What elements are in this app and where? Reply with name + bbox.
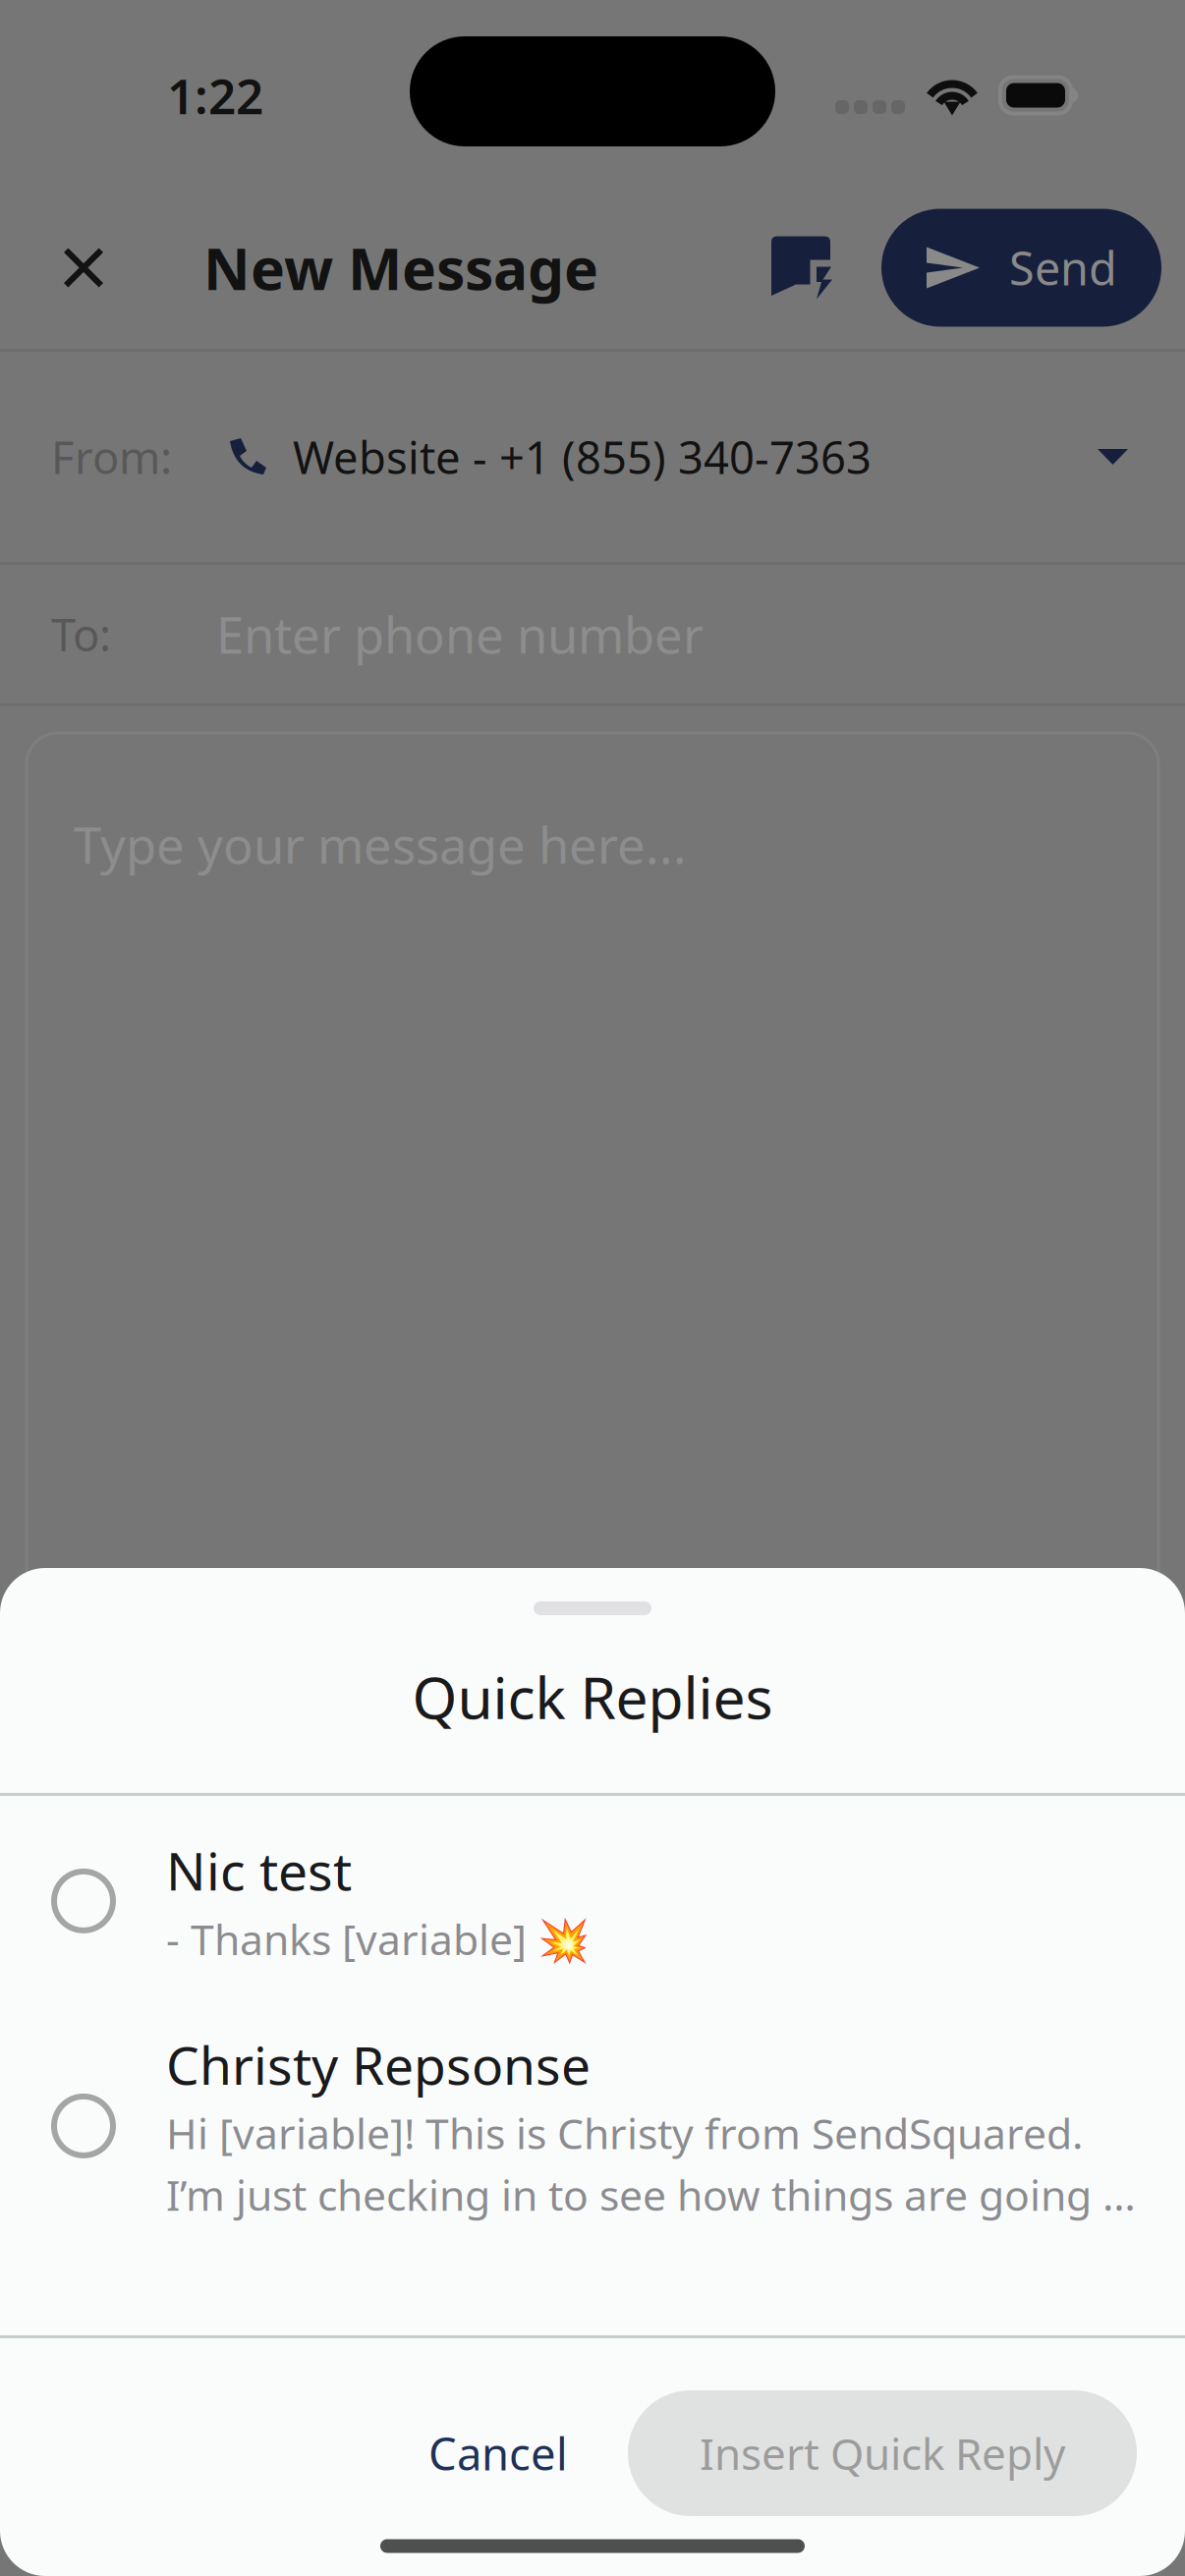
staticText: New Message <box>203 229 598 306</box>
staticText: Quick Replies <box>412 1658 773 1735</box>
button[interactable]: Insert Quick Reply <box>628 2390 1137 2516</box>
button[interactable]: Quick Replies <box>746 199 858 336</box>
staticText: From: <box>51 427 172 486</box>
staticText: Enter phone number <box>216 601 704 667</box>
button[interactable]: Nic test <box>0 1796 1185 2006</box>
staticText: To: <box>51 605 111 664</box>
button[interactable]: Christy Repsonse <box>0 2006 1185 2246</box>
staticText: Christy Repsonse <box>166 2030 591 2099</box>
staticText: Send <box>1009 237 1117 298</box>
staticText: I’m just checking in to see how things a… <box>166 2167 1136 2222</box>
staticText: Insert Quick Reply <box>700 2425 1065 2482</box>
button[interactable]: Close <box>32 199 135 336</box>
staticText: - Thanks [variable] 💥 <box>166 1911 590 1967</box>
staticText: Type your message here... <box>74 812 687 878</box>
staticText: Hi [variable]! This is Christy from Send… <box>166 2105 1083 2161</box>
staticText: Website - +1 (855) 340-7363 <box>293 427 872 486</box>
button[interactable]: Cancel <box>393 2390 603 2516</box>
staticText: Nic test <box>166 1835 352 1905</box>
staticText: 1:22 <box>167 63 263 127</box>
staticText: Cancel <box>428 2424 568 2483</box>
button[interactable]: Send <box>881 209 1161 327</box>
